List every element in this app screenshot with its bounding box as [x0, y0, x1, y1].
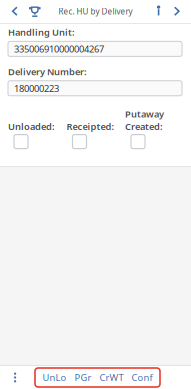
- staticText: CrWT: [99, 371, 123, 384]
- button[interactable]: UnLo: [38, 369, 70, 385]
- button[interactable]: PGr: [70, 369, 95, 385]
- button[interactable]: Conf: [127, 369, 156, 385]
- button[interactable]: Awards: [25, 0, 45, 22]
- staticText: Rec. HU by Delivery: [58, 6, 132, 17]
- button[interactable]: Receipted:: [66, 133, 86, 149]
- button[interactable]: Info: [150, 0, 168, 22]
- staticText: PGr: [74, 371, 91, 384]
- staticText: Unloaded:: [8, 120, 55, 133]
- button[interactable]: More: [6, 366, 35, 389]
- staticText: Created:: [125, 120, 163, 133]
- staticText: UnLo: [42, 371, 66, 384]
- staticText: Putaway: [125, 108, 164, 120]
- button[interactable]: Back: [5, 0, 25, 22]
- staticText: Handling Unit:: [8, 26, 75, 38]
- button[interactable]: Forward: [168, 0, 186, 22]
- staticText: 180000223: [14, 82, 59, 94]
- button[interactable]: Putaway Created:: [125, 133, 145, 149]
- staticText: 335006910000004267: [14, 43, 104, 55]
- button[interactable]: CrWT: [95, 369, 127, 385]
- staticText: Receipted:: [66, 120, 114, 133]
- button[interactable]: Unloaded:: [8, 133, 28, 149]
- staticText: Conf: [131, 371, 152, 384]
- staticText: Delivery Number:: [8, 65, 87, 78]
